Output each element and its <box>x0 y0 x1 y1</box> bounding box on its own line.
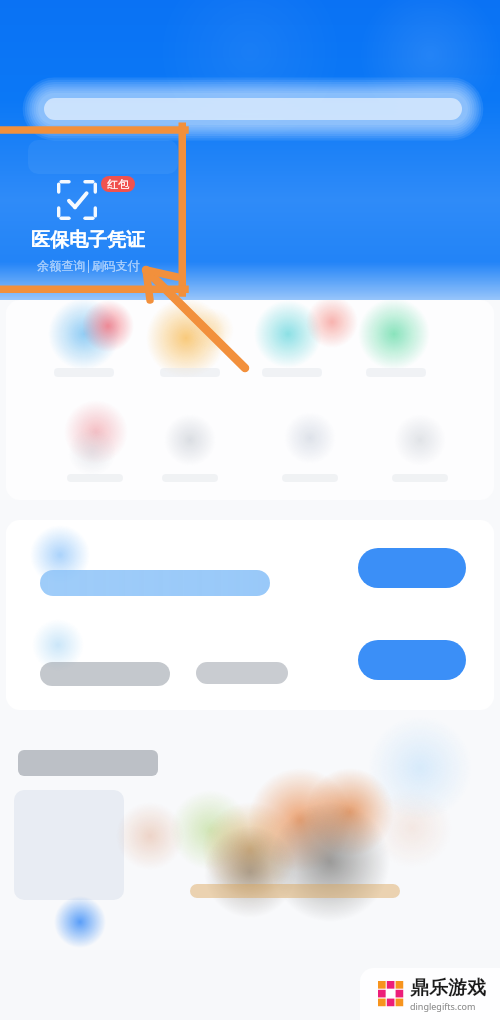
staticText: 鼎乐游戏 <box>410 976 486 1000</box>
staticText: dinglegifts.com <box>410 1000 476 1012</box>
button[interactable]: Action <box>358 640 466 680</box>
other: Scan code <box>57 180 97 220</box>
staticText: 医保电子凭证 <box>31 228 145 252</box>
staticText: 红包 <box>107 177 129 191</box>
staticText: 余额查询|刷码支付 <box>37 257 140 273</box>
button[interactable]: Action <box>358 548 466 588</box>
button[interactable]: Scan code <box>8 176 168 273</box>
